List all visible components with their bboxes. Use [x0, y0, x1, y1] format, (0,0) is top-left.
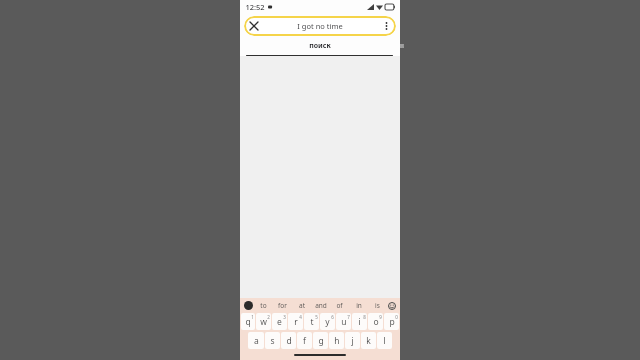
staticText: 5	[315, 314, 318, 320]
button[interactable]: h	[329, 332, 344, 349]
button[interactable]: r	[288, 313, 303, 330]
button[interactable]: i	[352, 313, 367, 330]
button[interactable]: g	[313, 332, 328, 349]
staticText: 0	[395, 314, 398, 320]
button[interactable]: o	[368, 313, 383, 330]
button[interactable]: for	[273, 301, 292, 310]
button[interactable]: in	[349, 301, 368, 310]
staticText: w	[260, 316, 267, 328]
staticText: d	[286, 335, 292, 347]
button[interactable]: e	[272, 313, 287, 330]
button[interactable]: u	[336, 313, 351, 330]
staticText: f	[303, 335, 306, 347]
staticText: 12:52	[245, 2, 265, 12]
staticText: and	[315, 301, 327, 310]
button[interactable]: d	[281, 332, 296, 349]
staticText: i	[358, 316, 361, 328]
staticText: k	[366, 335, 371, 347]
button[interactable]: is	[368, 301, 387, 310]
staticText: e	[277, 316, 282, 328]
staticText: поиск	[309, 41, 331, 51]
staticText: o	[373, 316, 379, 328]
button[interactable]: Emoji	[387, 301, 396, 310]
staticText: 1	[251, 314, 254, 320]
staticText: l	[383, 335, 386, 347]
staticText: 2	[267, 314, 270, 320]
staticText: of	[336, 301, 343, 310]
button[interactable]: and	[311, 301, 330, 310]
staticText: 8	[363, 314, 366, 320]
button[interactable]: l	[377, 332, 392, 349]
button[interactable]: k	[361, 332, 376, 349]
staticText: s	[270, 335, 275, 347]
button[interactable]: поиск	[246, 38, 400, 56]
staticText: t	[310, 316, 314, 328]
button[interactable]: Clear	[244, 16, 264, 36]
staticText: y	[325, 316, 330, 328]
button[interactable]: of	[330, 301, 349, 310]
button[interactable]: a	[248, 332, 264, 349]
button[interactable]: Clear	[244, 16, 396, 36]
staticText: r	[294, 316, 298, 328]
staticText: 9	[379, 314, 382, 320]
button[interactable]: s	[265, 332, 280, 349]
button[interactable]: to	[253, 301, 273, 310]
button[interactable]: q	[241, 313, 255, 330]
staticText: q	[245, 316, 251, 328]
staticText: I got no time	[297, 21, 343, 31]
staticText: at	[299, 301, 305, 310]
staticText: h	[334, 335, 340, 347]
staticText: is	[375, 301, 380, 310]
staticText: a	[254, 335, 259, 347]
staticText: 6	[331, 314, 334, 320]
button[interactable]: Google	[244, 301, 253, 310]
button[interactable]: p	[384, 313, 399, 330]
staticText: 4	[299, 314, 302, 320]
staticText: j	[351, 335, 354, 347]
staticText: in	[356, 301, 362, 310]
staticText: p	[389, 316, 395, 328]
staticText: for	[278, 301, 287, 310]
staticText: g	[318, 335, 324, 347]
staticText: to	[260, 301, 267, 310]
button[interactable]: at	[292, 301, 311, 310]
button[interactable]: j	[345, 332, 360, 349]
staticText: 3	[283, 314, 286, 320]
staticText: u	[341, 316, 347, 328]
button[interactable]: t	[304, 313, 319, 330]
staticText: 7	[347, 314, 350, 320]
button[interactable]: y	[320, 313, 335, 330]
button[interactable]: More options	[376, 16, 396, 36]
button[interactable]: w	[256, 313, 271, 330]
button[interactable]: f	[297, 332, 312, 349]
